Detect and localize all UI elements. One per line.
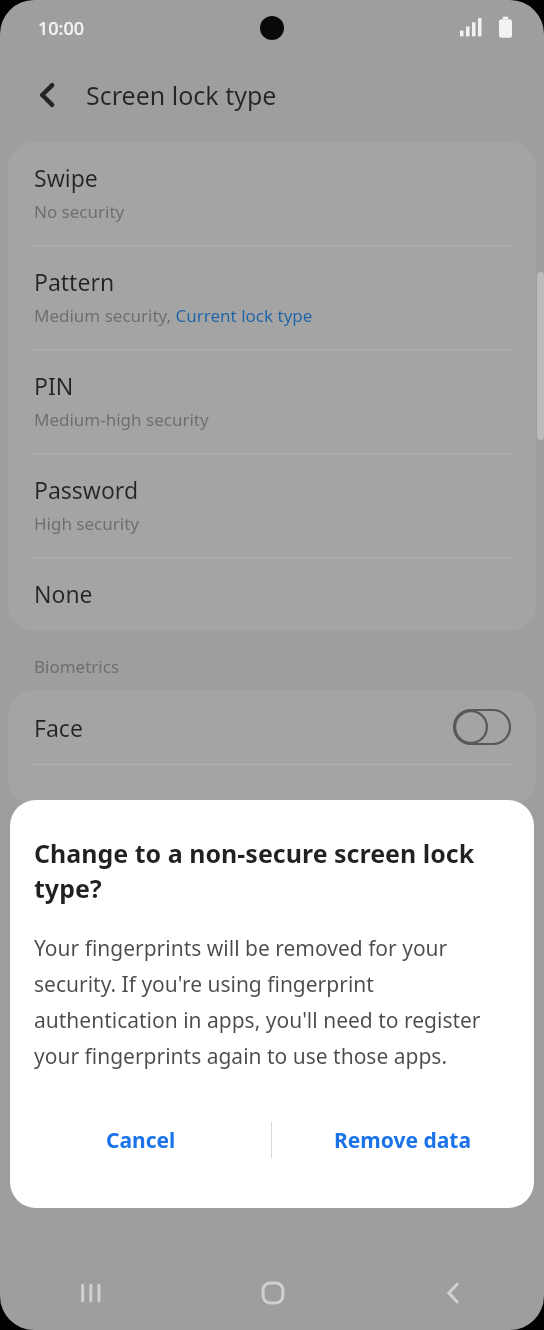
staticText: Pattern <box>34 266 115 297</box>
staticText: Medium security, Current lock type <box>34 304 313 327</box>
staticText: Face <box>34 712 83 743</box>
button[interactable]: Pattern <box>8 246 536 349</box>
button[interactable]: Face <box>8 690 536 764</box>
staticText: Screen lock type <box>86 78 277 112</box>
staticText: None <box>34 578 93 609</box>
button[interactable]: Back <box>22 69 74 121</box>
staticText: 10:00 <box>38 16 85 41</box>
staticText: Medium-high security <box>34 408 209 431</box>
staticText: No security <box>34 200 125 223</box>
button[interactable]: Remove data <box>272 1104 534 1176</box>
button[interactable]: Face toggle <box>454 710 510 744</box>
staticText: Swipe <box>34 162 98 193</box>
staticText: Remove data <box>334 1126 472 1155</box>
button[interactable]: Back <box>363 1256 544 1330</box>
button[interactable]: None <box>8 558 536 631</box>
staticText: Biometrics <box>34 655 120 678</box>
button[interactable]: Recents <box>0 1256 182 1330</box>
button[interactable]: Password <box>8 454 536 557</box>
staticText: Password <box>34 474 139 505</box>
button[interactable]: PIN <box>8 350 536 453</box>
button[interactable]: Cancel <box>10 1104 271 1176</box>
button[interactable]: Home <box>182 1256 363 1330</box>
staticText: Change to a non-secure screen lock type? <box>34 836 510 906</box>
button[interactable]: Swipe <box>8 142 536 245</box>
staticText: Cancel <box>106 1126 176 1155</box>
staticText: High security <box>34 512 139 535</box>
staticText: PIN <box>34 370 74 401</box>
staticText: Your fingerprints will be removed for yo… <box>34 934 510 1070</box>
